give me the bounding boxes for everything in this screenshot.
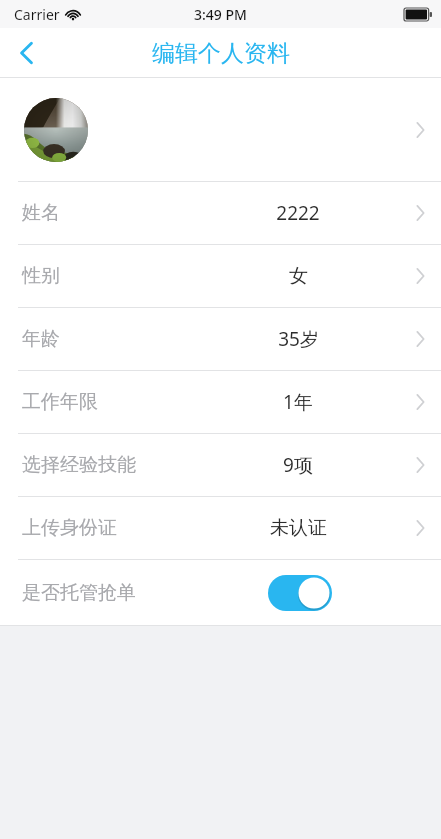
staticText: 2222 [276, 200, 320, 226]
staticText: 是否托管抢单 [22, 581, 136, 605]
button[interactable]: 上传身份证 [0, 497, 441, 559]
button[interactable]: Back [0, 28, 52, 78]
staticText: 未认证 [270, 516, 327, 540]
button[interactable]: 选择经验技能 [0, 434, 441, 496]
button[interactable]: 性别 [0, 245, 441, 307]
staticText: 女 [289, 264, 308, 288]
button[interactable]: 托管抢单开关 [268, 575, 332, 611]
staticText: 姓名 [22, 201, 60, 225]
button[interactable]: 姓名 [0, 182, 441, 244]
staticText: Carrier [14, 5, 60, 24]
staticText: 上传身份证 [22, 516, 117, 540]
staticText: 1年 [283, 389, 313, 415]
staticText: 编辑个人资料 [152, 39, 290, 68]
button[interactable] [0, 78, 441, 181]
staticText: 选择经验技能 [22, 453, 136, 477]
staticText: 工作年限 [22, 390, 98, 414]
staticText: 年龄 [22, 327, 60, 351]
button[interactable]: 年龄 [0, 308, 441, 370]
staticText: 9项 [283, 452, 313, 478]
button[interactable]: 工作年限 [0, 371, 441, 433]
staticText: 35岁 [278, 326, 319, 352]
staticText: 3:49 PM [194, 5, 247, 24]
staticText: 性别 [22, 264, 60, 288]
